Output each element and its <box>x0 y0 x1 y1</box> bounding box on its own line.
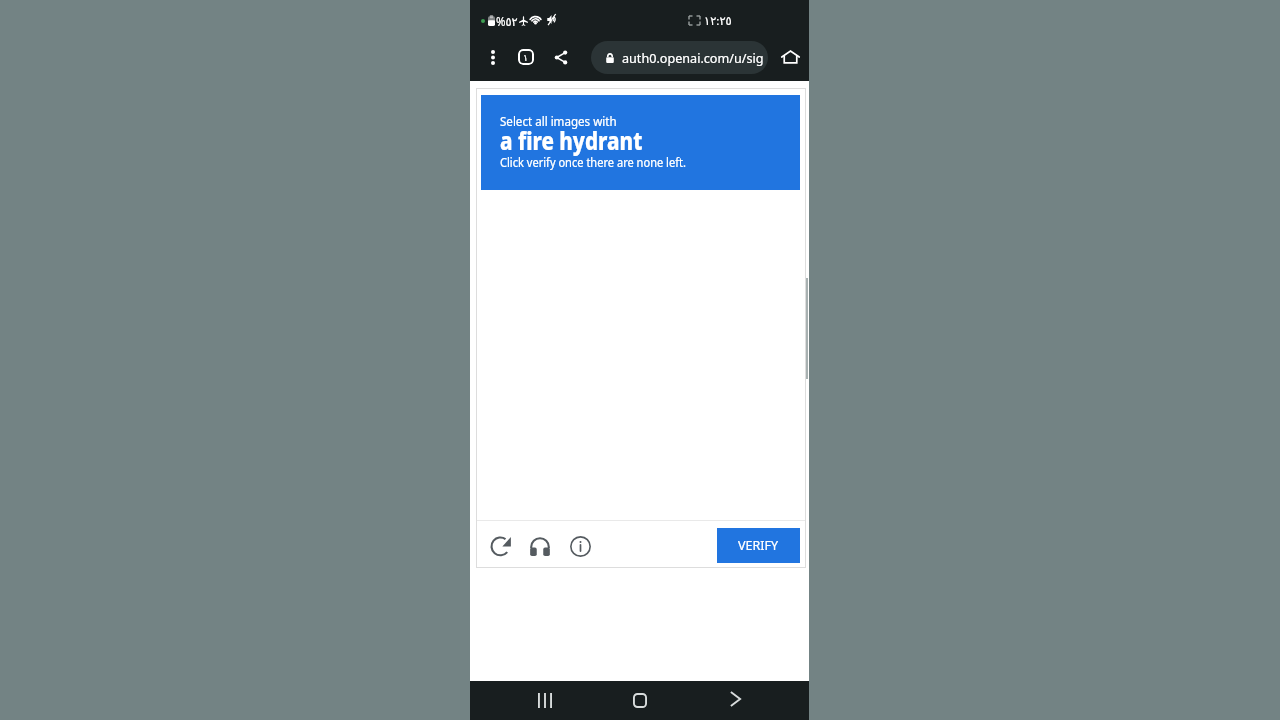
staticText: ١٢:٢٥ <box>704 13 732 29</box>
button[interactable]: Tabs <box>508 39 544 75</box>
button[interactable]: Recent apps <box>527 682 563 718</box>
staticText: Select all images with <box>500 113 617 130</box>
staticText: a fire hydrant <box>500 123 643 158</box>
button[interactable]: Help <box>562 528 598 564</box>
button[interactable]: Back <box>717 681 753 717</box>
staticText: VERIFY <box>738 537 779 554</box>
button[interactable]: Home <box>772 39 808 75</box>
button[interactable]: Get an audio challenge <box>522 528 558 564</box>
button[interactable]: Get a new challenge <box>483 528 519 564</box>
button[interactable]: auth0.openai.com/u/sig <box>591 41 768 74</box>
staticText: %٥٢ <box>496 13 518 29</box>
button[interactable]: More options <box>475 39 511 75</box>
button[interactable]: VERIFY <box>717 528 800 563</box>
staticText: Click verify once there are none left. <box>500 154 687 170</box>
staticText: ١ <box>523 52 529 63</box>
button[interactable]: Home <box>622 682 658 718</box>
staticText: auth0.openai.com/u/sig <box>622 49 764 67</box>
button[interactable]: Share <box>543 39 579 75</box>
